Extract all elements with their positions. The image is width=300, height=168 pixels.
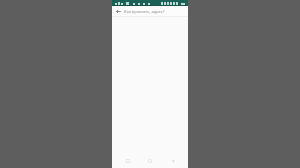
button[interactable]: Recents — [121, 155, 135, 167]
button[interactable]: Home — [143, 155, 157, 167]
button[interactable]: Как проехать, адрес? — [124, 7, 185, 15]
button[interactable]: Back — [114, 7, 122, 15]
button[interactable]: Back — [166, 155, 180, 167]
staticText: Как проехать, адрес? — [124, 9, 165, 14]
